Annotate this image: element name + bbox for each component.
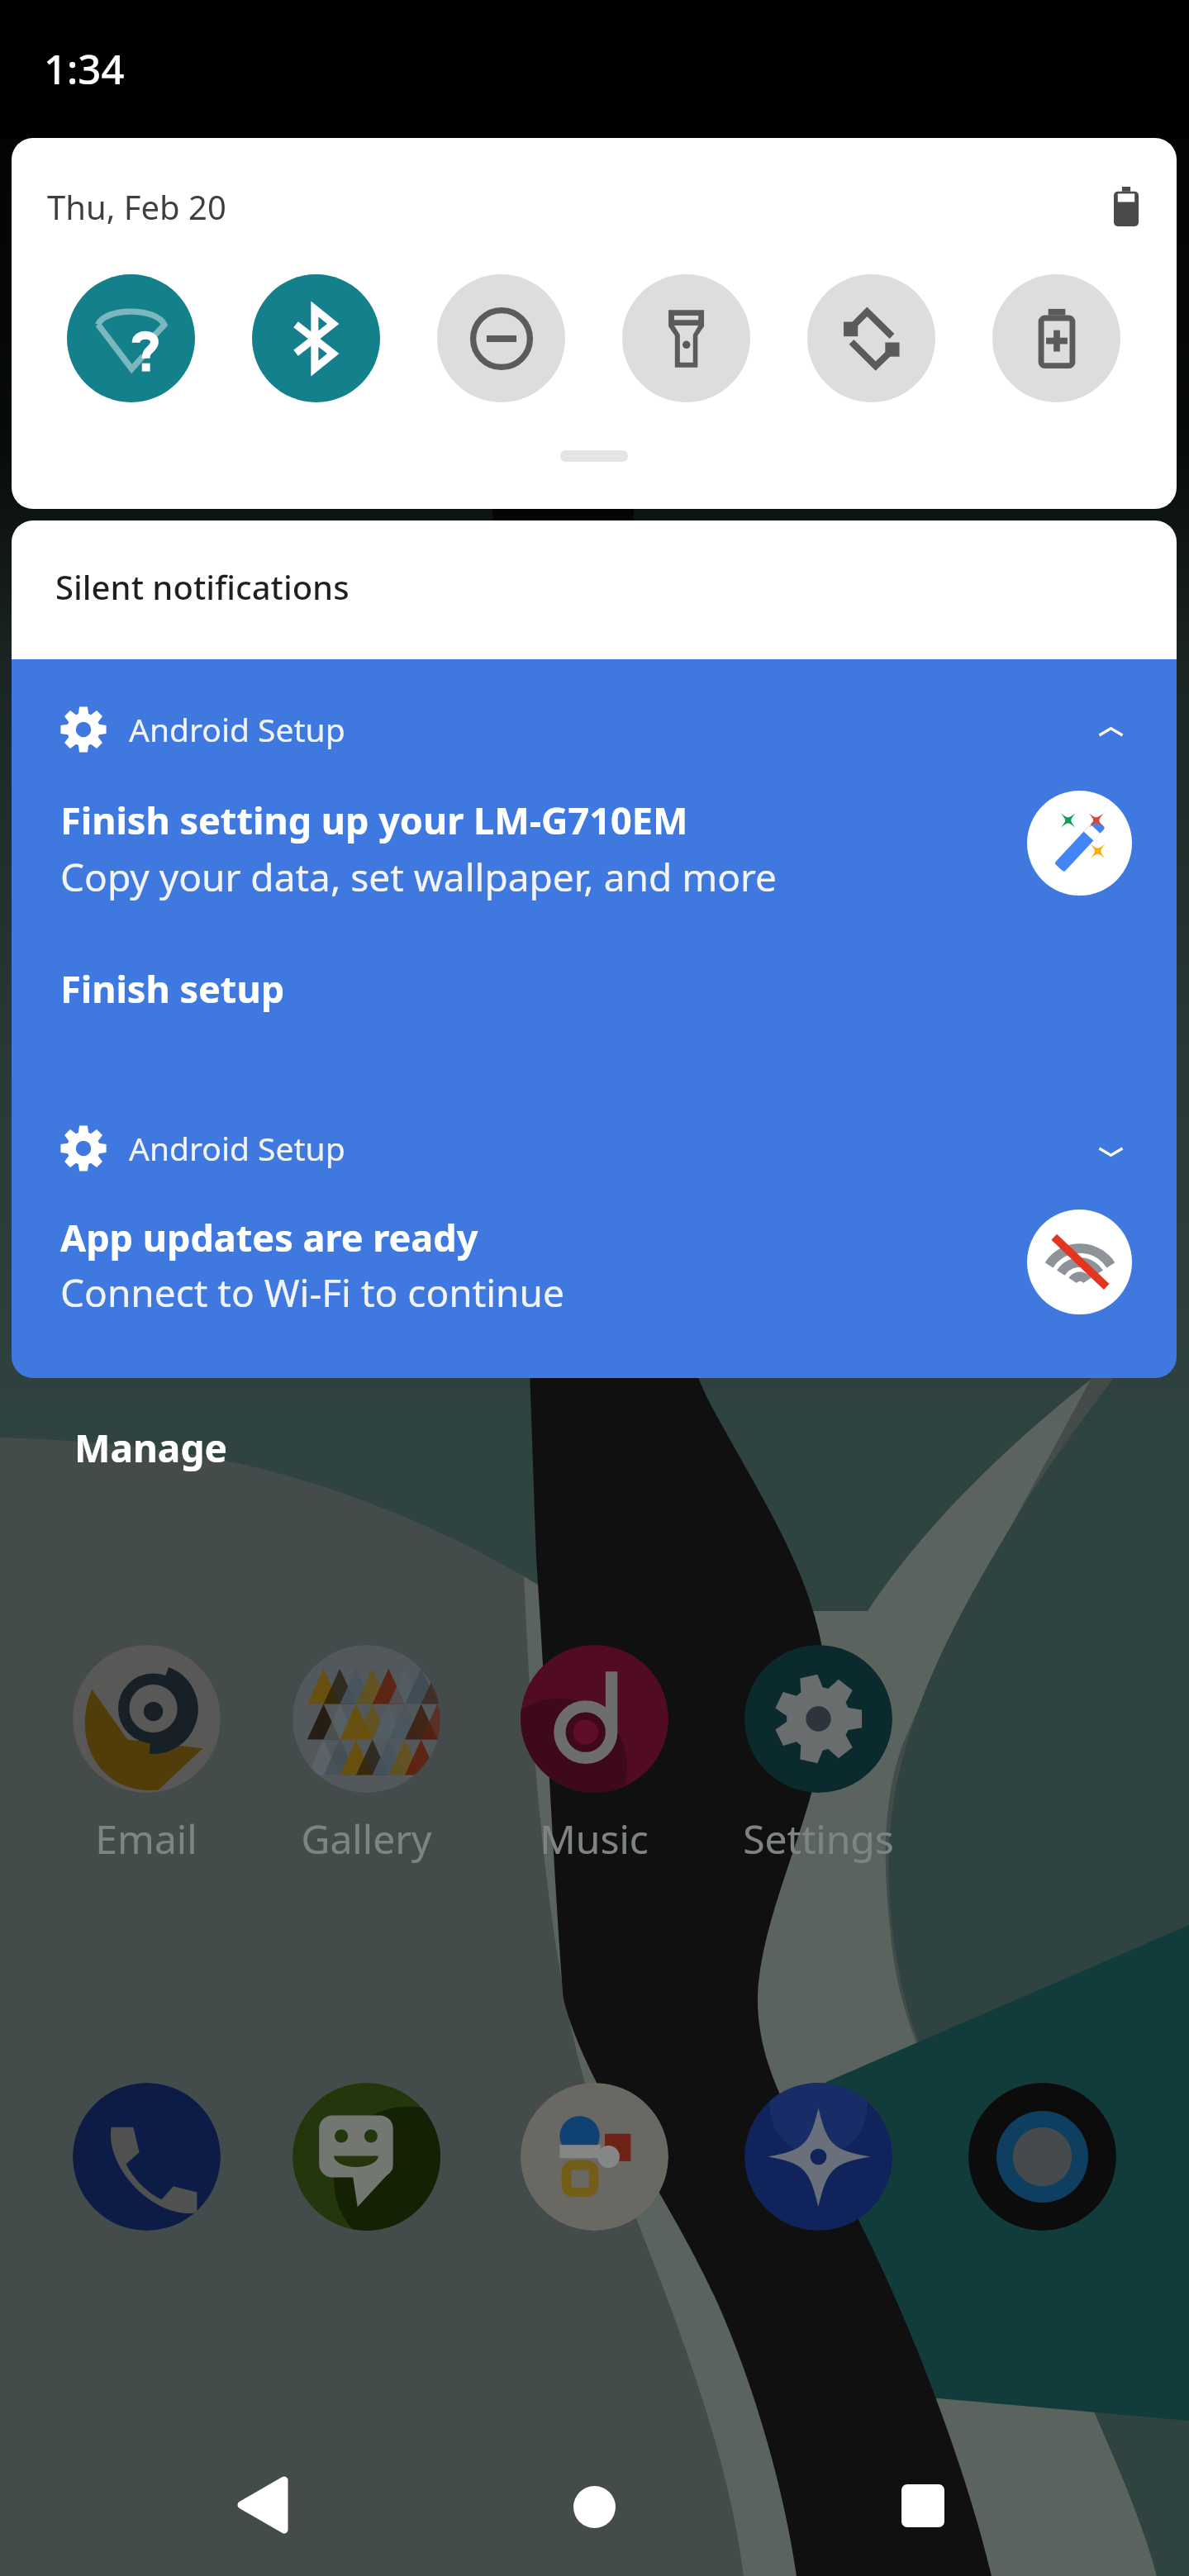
- button[interactable]: Compass: [744, 2083, 892, 2231]
- button[interactable]: Setup wizard: [1027, 791, 1132, 896]
- button[interactable]: Do not disturb: [437, 274, 565, 402]
- staticText: Thu, Feb 20: [47, 184, 226, 229]
- button[interactable]: Settings: [744, 1645, 892, 1793]
- button[interactable]: Wi-Fi: [67, 274, 195, 402]
- staticText: Android Setup: [129, 707, 345, 751]
- button[interactable]: Android Setup notification: [12, 690, 1177, 769]
- button[interactable]: Finish setup: [12, 659, 236, 710]
- staticText: Finish setting up your LM-G710EM: [60, 795, 688, 845]
- button[interactable]: Bluetooth: [252, 274, 380, 402]
- button[interactable]: Silent notifications: [12, 520, 1177, 659]
- button[interactable]: Camera: [968, 2083, 1116, 2231]
- button[interactable]: Back: [197, 2439, 329, 2571]
- button[interactable]: Contacts: [521, 2083, 668, 2231]
- staticText: Gallery: [301, 1812, 432, 1865]
- button[interactable]: Wi-Fi required: [1027, 1210, 1132, 1314]
- button[interactable]: Email: [73, 1645, 221, 1793]
- staticText: Email: [95, 1812, 197, 1865]
- button[interactable]: Home: [528, 2441, 660, 2573]
- staticText: Connect to Wi-Fi to continue: [60, 1267, 564, 1319]
- staticText: Android Setup: [129, 1126, 345, 1170]
- button[interactable]: Music: [521, 1645, 668, 1793]
- staticText: Music: [540, 1812, 649, 1865]
- staticText: Silent notifications: [55, 564, 350, 609]
- staticText: 1:34: [44, 41, 125, 97]
- button[interactable]: Gallery: [292, 1645, 440, 1793]
- button[interactable]: Battery saver: [992, 274, 1120, 402]
- button[interactable]: Messages: [292, 2083, 440, 2231]
- staticText: Copy your data, set wallpaper, and more: [60, 851, 778, 903]
- button[interactable]: Flashlight: [622, 274, 750, 402]
- button[interactable]: Phone: [73, 2083, 221, 2231]
- staticText: Settings: [743, 1812, 894, 1865]
- button[interactable]: Recents: [857, 2440, 989, 2572]
- staticText: App updates are ready: [60, 1212, 478, 1262]
- button[interactable]: Android Setup notification: [12, 1109, 1177, 1188]
- button[interactable]: Auto-rotate: [807, 274, 935, 402]
